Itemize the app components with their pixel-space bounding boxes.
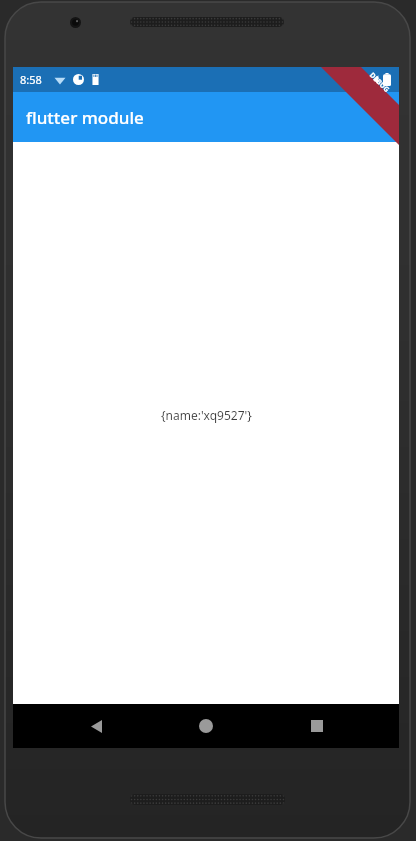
button[interactable]: Recent apps (298, 707, 336, 745)
button[interactable]: Home (187, 707, 225, 745)
staticText: {name:'xq9527'} (161, 407, 252, 423)
staticText: DEBUG (367, 71, 392, 95)
staticText: 8:58 (20, 72, 42, 87)
button[interactable]: Back (77, 707, 115, 745)
staticText: flutter module (26, 106, 144, 129)
